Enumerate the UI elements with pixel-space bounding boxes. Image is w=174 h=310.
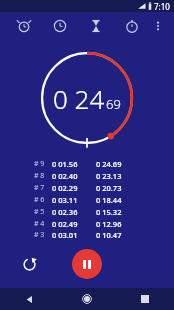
button[interactable]: # 7 bbox=[34, 182, 140, 193]
staticText: # 8 bbox=[34, 171, 52, 181]
button[interactable]: Back bbox=[12, 288, 46, 310]
staticText: 0 03.01 bbox=[52, 230, 96, 240]
button[interactable]: # 9 bbox=[34, 158, 140, 169]
button[interactable]: Clock bbox=[42, 12, 78, 40]
staticText: # 9 bbox=[34, 159, 52, 169]
staticText: 0 03.11 bbox=[52, 195, 96, 205]
button[interactable]: # 5 bbox=[34, 206, 140, 217]
staticText: 0 02.49 bbox=[52, 219, 96, 229]
button[interactable]: Recent apps bbox=[128, 288, 162, 310]
button[interactable]: Alarm bbox=[6, 12, 42, 40]
staticText: 0 23.13 bbox=[96, 171, 140, 181]
staticText: # 4 bbox=[34, 219, 52, 229]
staticText: # 3 bbox=[34, 230, 52, 240]
button[interactable]: Stopwatch bbox=[114, 12, 150, 40]
staticText: 0 10.47 bbox=[96, 230, 140, 240]
staticText: 0 24 bbox=[53, 81, 105, 116]
staticText: 0 02.36 bbox=[52, 207, 96, 217]
button[interactable]: Home bbox=[70, 288, 104, 310]
button[interactable]: Pause bbox=[72, 249, 102, 279]
staticText: # 6 bbox=[34, 195, 52, 205]
staticText: 69 bbox=[106, 95, 121, 113]
button[interactable]: # 3 bbox=[34, 230, 140, 240]
button[interactable]: # 6 bbox=[34, 194, 140, 205]
button[interactable]: More options bbox=[146, 14, 170, 38]
staticText: 0 02.29 bbox=[52, 183, 96, 193]
staticText: 0 24.69 bbox=[96, 159, 140, 169]
staticText: # 5 bbox=[34, 207, 52, 217]
button[interactable]: Reset bbox=[16, 251, 42, 277]
staticText: 0 18.44 bbox=[96, 195, 140, 205]
staticText: 0 01.56 bbox=[52, 159, 96, 169]
staticText: 0 02.40 bbox=[52, 171, 96, 181]
button[interactable]: # 4 bbox=[34, 218, 140, 229]
staticText: # 7 bbox=[34, 183, 52, 193]
button[interactable]: Timer bbox=[78, 12, 114, 40]
staticText: 0 20.73 bbox=[96, 183, 140, 193]
staticText: 0 12.96 bbox=[96, 219, 140, 229]
button[interactable]: # 8 bbox=[34, 170, 140, 181]
staticText: 0 15.32 bbox=[96, 207, 140, 217]
staticText: 7:10 bbox=[154, 1, 170, 12]
